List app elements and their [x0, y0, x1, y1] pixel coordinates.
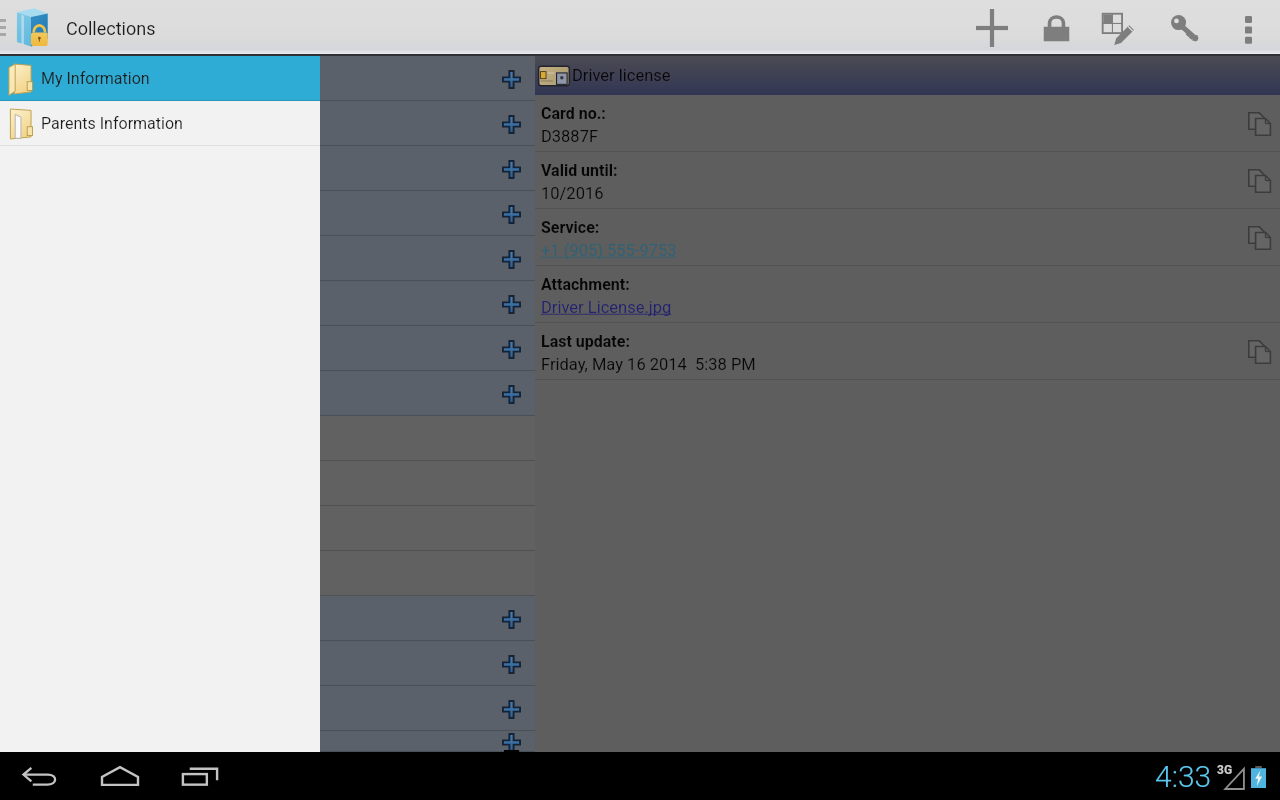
button[interactable]: Valid until: — [535, 152, 1280, 209]
button[interactable] — [320, 56, 535, 101]
staticText: Card no.: — [541, 104, 606, 123]
staticText: Last update: — [541, 332, 630, 351]
staticText: Friday, May 16 2014 5:38 PM — [541, 355, 756, 374]
staticText: Driver License.jpg — [541, 298, 672, 317]
button[interactable]: Copy — [1244, 165, 1276, 197]
staticText: Service: — [541, 218, 600, 237]
button[interactable]: Lock — [1028, 0, 1084, 56]
button[interactable]: Card no.: — [535, 95, 1280, 152]
button[interactable] — [320, 596, 535, 641]
button[interactable]: Parents Information — [0, 101, 320, 146]
button[interactable]: Recent apps — [176, 752, 224, 800]
staticText: +1 (905) 555-9753 — [541, 241, 677, 260]
staticText: Attachment: — [541, 275, 630, 294]
staticText: Collections — [66, 18, 156, 39]
button[interactable] — [320, 686, 535, 731]
button[interactable]: My Information — [0, 56, 320, 101]
button[interactable] — [320, 326, 535, 371]
button[interactable]: Copy — [1244, 336, 1276, 368]
staticText: Parents Information — [41, 114, 183, 133]
button[interactable]: Key — [1156, 0, 1212, 56]
button[interactable]: Home — [96, 752, 144, 800]
button[interactable] — [320, 731, 535, 752]
button[interactable] — [320, 281, 535, 326]
button[interactable] — [320, 641, 535, 686]
button[interactable]: Back — [16, 752, 64, 800]
button[interactable]: Last update: — [535, 323, 1280, 380]
staticText: 3G — [1217, 763, 1233, 777]
button[interactable]: Attachment: — [535, 266, 1280, 323]
staticText: D3887F — [541, 127, 599, 146]
staticText: My Information — [41, 69, 150, 88]
button[interactable] — [320, 101, 535, 146]
button[interactable]: Copy — [1244, 222, 1276, 254]
button[interactable] — [320, 146, 535, 191]
button[interactable] — [320, 191, 535, 236]
staticText: Driver license — [572, 66, 671, 85]
button[interactable] — [320, 236, 535, 281]
staticText: Valid until: — [541, 161, 618, 180]
button[interactable]: Copy — [1244, 108, 1276, 140]
button[interactable]: Add — [964, 0, 1020, 56]
button[interactable] — [320, 371, 535, 416]
button[interactable]: More options — [1220, 0, 1276, 56]
staticText: 4:33 — [1155, 759, 1212, 794]
button[interactable]: Edit — [1091, 0, 1147, 56]
button[interactable]: Service: — [535, 209, 1280, 266]
staticText: 10/2016 — [541, 184, 604, 203]
